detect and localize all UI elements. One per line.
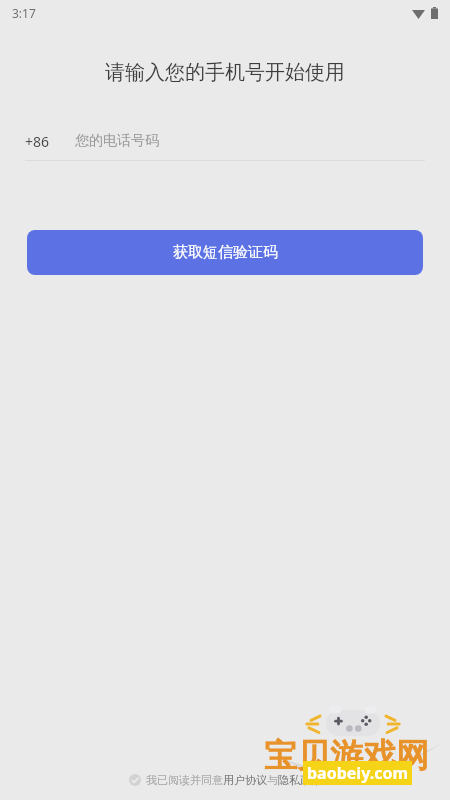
staticText: 您的电话号码	[75, 132, 159, 150]
staticText: 获取短信验证码	[173, 243, 278, 262]
other: Agree checkbox	[129, 774, 141, 786]
staticText: 宝贝游戏网	[264, 735, 429, 777]
staticText: +86	[25, 132, 50, 151]
staticText: 用户协议	[223, 773, 267, 787]
staticText: 隐私政策	[278, 773, 322, 787]
staticText: 请输入您的手机号开始使用	[0, 60, 450, 85]
staticText: baobeiy.com	[307, 762, 408, 784]
button[interactable]: 获取短信验证码	[27, 230, 423, 275]
button[interactable]: Agree checkbox	[129, 773, 322, 787]
staticText: 与	[267, 773, 278, 787]
staticText: 我已阅读并同意	[146, 773, 223, 787]
button[interactable]: +86	[25, 122, 425, 160]
staticText: 3:17	[12, 5, 36, 21]
